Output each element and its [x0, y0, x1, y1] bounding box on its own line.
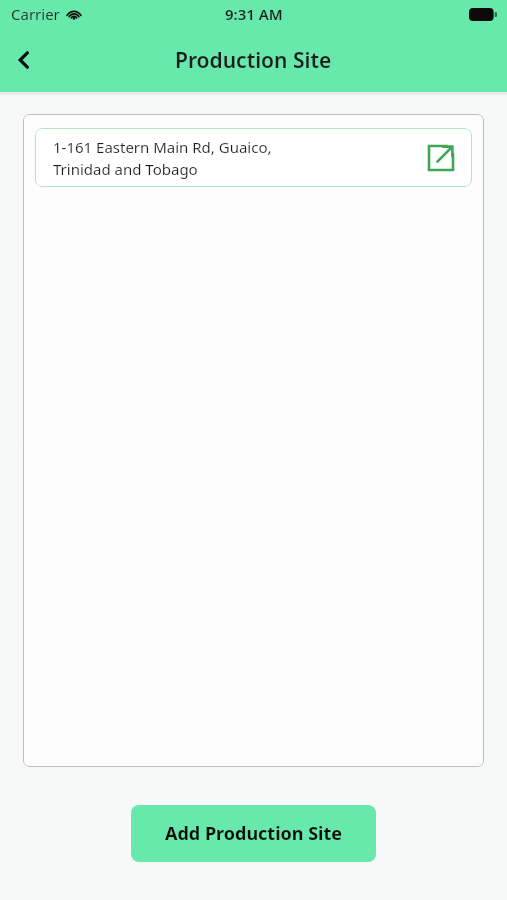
button[interactable]: Add Production Site [131, 805, 376, 862]
staticText: Trinidad and Tobago [53, 159, 198, 179]
staticText: Carrier [11, 4, 60, 24]
staticText: 9:31 AM [225, 4, 283, 24]
button[interactable]: Back [0, 36, 48, 84]
staticText: Production Site [175, 46, 332, 75]
staticText: Add Production Site [165, 821, 343, 846]
button[interactable]: 1-161 Eastern Main Rd, Guaico, [35, 128, 472, 187]
staticText: 1-161 Eastern Main Rd, Guaico, [53, 137, 272, 157]
button[interactable]: Open in maps [424, 141, 458, 175]
